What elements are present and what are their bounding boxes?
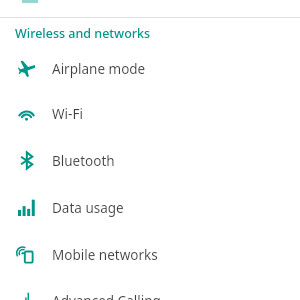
staticText: Advanced Calling: [52, 292, 161, 300]
staticText: Mobile networks: [52, 246, 158, 264]
other: Mobile networks: [18, 246, 35, 263]
button[interactable]: Mobile networks: [0, 231, 300, 278]
staticText: Airplane mode: [52, 60, 146, 78]
other: Data usage: [18, 199, 35, 216]
button[interactable]: Wi-Fi: [0, 90, 300, 137]
staticText: Wi-Fi: [52, 105, 83, 123]
other: Advanced Calling: [18, 292, 35, 300]
staticText: Wireless and networks: [15, 25, 151, 41]
staticText: Bluetooth: [52, 152, 115, 170]
button[interactable]: Advanced Calling: [0, 277, 300, 300]
other: Bluetooth: [18, 152, 35, 169]
other: Airplane mode: [18, 60, 35, 77]
staticText: Data usage: [52, 199, 124, 217]
other: Wi-Fi: [18, 105, 35, 122]
button[interactable]: Data usage: [0, 184, 300, 231]
button[interactable]: Airplane mode: [0, 45, 300, 92]
button[interactable]: Bluetooth: [0, 137, 300, 184]
